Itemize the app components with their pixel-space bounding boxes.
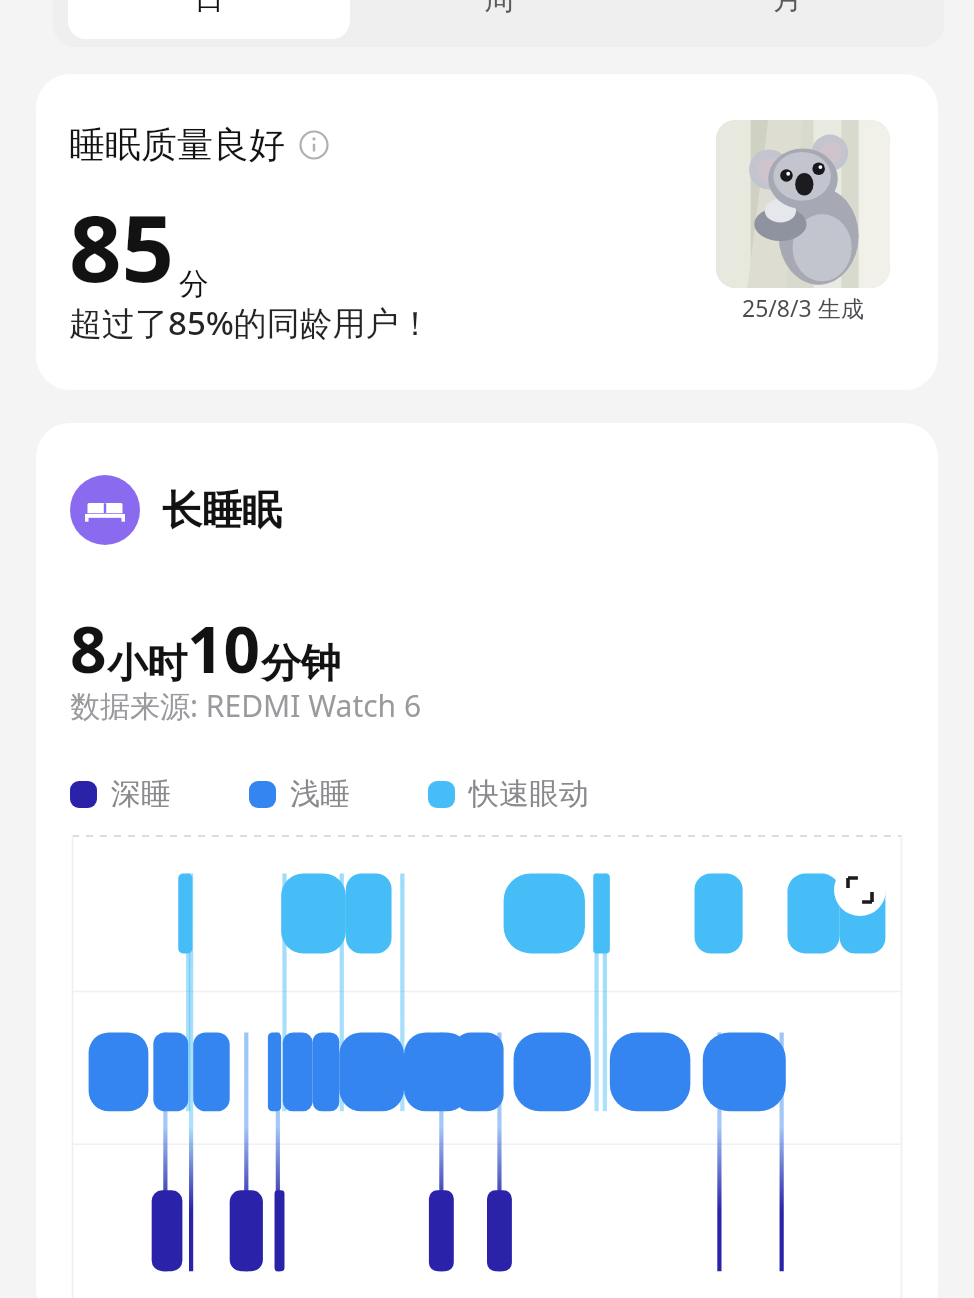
button[interactable]: 浅睡 bbox=[249, 775, 350, 813]
button[interactable]: 说明 bbox=[298, 129, 330, 161]
staticText: 快速眼动 bbox=[469, 775, 589, 813]
staticText: 85 bbox=[69, 184, 175, 309]
staticText: 深睡 bbox=[111, 775, 171, 813]
staticText: 数据来源: REDMI Watch 6 bbox=[70, 685, 422, 726]
staticText: 超过了85%的同龄用户！ bbox=[69, 300, 432, 345]
staticText: 日 bbox=[194, 0, 224, 18]
staticText: 分钟 bbox=[261, 638, 341, 688]
button[interactable]: 睡眠质量良好 bbox=[36, 74, 938, 390]
staticText: 分 bbox=[179, 265, 209, 303]
button[interactable]: 日 bbox=[68, 0, 350, 39]
staticText: 长睡眠 bbox=[162, 485, 282, 535]
staticText: 周 bbox=[484, 0, 514, 18]
staticText: 小时 bbox=[107, 638, 187, 688]
button[interactable]: 长睡眠 bbox=[70, 475, 282, 545]
button[interactable]: 周 bbox=[358, 0, 640, 39]
button[interactable]: 月 bbox=[647, 0, 929, 39]
staticText: 浅睡 bbox=[290, 775, 350, 813]
staticText: 10 bbox=[187, 605, 261, 692]
staticText: 月 bbox=[773, 0, 803, 18]
button[interactable]: 全屏查看 bbox=[834, 864, 886, 916]
button[interactable]: 快速眼动 bbox=[428, 775, 589, 813]
staticText: 睡眠质量良好 bbox=[69, 122, 285, 167]
button[interactable]: 深睡 bbox=[70, 775, 171, 813]
staticText: 25/8/3 生成 bbox=[742, 292, 864, 323]
button[interactable]: 25/8/3 生成 bbox=[708, 112, 898, 340]
staticText: 8 bbox=[70, 605, 107, 692]
